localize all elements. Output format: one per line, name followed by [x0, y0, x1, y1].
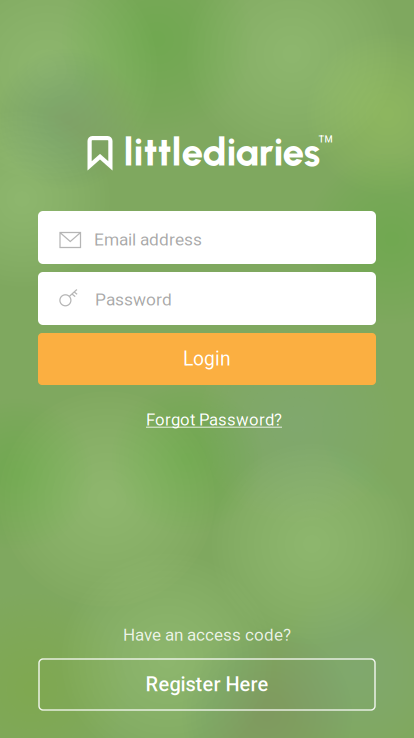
button[interactable]: Password	[38, 272, 376, 325]
button[interactable]: Email address	[38, 211, 376, 264]
staticText: Forgot Password?	[146, 410, 282, 430]
button[interactable]: Forgot Password?	[140, 407, 288, 433]
button[interactable]: Login	[38, 333, 376, 385]
staticText: Register Here	[145, 673, 268, 696]
staticText: Login	[183, 348, 231, 370]
staticText: TM	[318, 134, 332, 145]
staticText: littlediaries	[123, 129, 320, 175]
staticText: Password	[95, 289, 172, 310]
staticText: Email address	[94, 229, 202, 250]
staticText: Have an access code?	[123, 625, 291, 645]
button[interactable]: Register Here	[39, 659, 375, 710]
